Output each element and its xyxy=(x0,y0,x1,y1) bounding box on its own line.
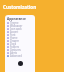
staticText: Advanced xyxy=(10,54,22,57)
button[interactable]: Home xyxy=(5,36,35,39)
button[interactable]: Icon pack xyxy=(5,27,35,30)
button[interactable]: Accent xyxy=(5,30,35,33)
button[interactable]: Wallpaper xyxy=(5,24,35,27)
button[interactable]: Gestures xyxy=(5,48,35,51)
staticText: Icon pack xyxy=(10,27,22,30)
button[interactable]: Drawer xyxy=(5,39,35,42)
button[interactable]: Theme xyxy=(5,21,35,24)
staticText: Wallpaper xyxy=(10,24,23,27)
button[interactable]: Dock xyxy=(5,42,35,45)
staticText: Folders xyxy=(10,45,19,48)
staticText: Theme xyxy=(10,21,19,24)
button[interactable]: Advanced xyxy=(5,54,35,57)
staticText: Drawer xyxy=(10,39,19,42)
staticText: Home xyxy=(10,36,18,39)
button[interactable]: Alerts xyxy=(5,51,35,54)
button[interactable]: Font xyxy=(5,33,35,36)
staticText: Gestures xyxy=(10,48,21,51)
staticText: Appearance xyxy=(7,17,26,21)
staticText: Dock xyxy=(10,42,17,45)
staticText: Accent xyxy=(10,30,19,33)
button[interactable]: Add xyxy=(18,61,23,66)
staticText: Customization xyxy=(3,4,37,10)
button[interactable]: Folders xyxy=(5,45,35,48)
staticText: Alerts xyxy=(10,51,18,54)
staticText: Font xyxy=(10,33,16,36)
